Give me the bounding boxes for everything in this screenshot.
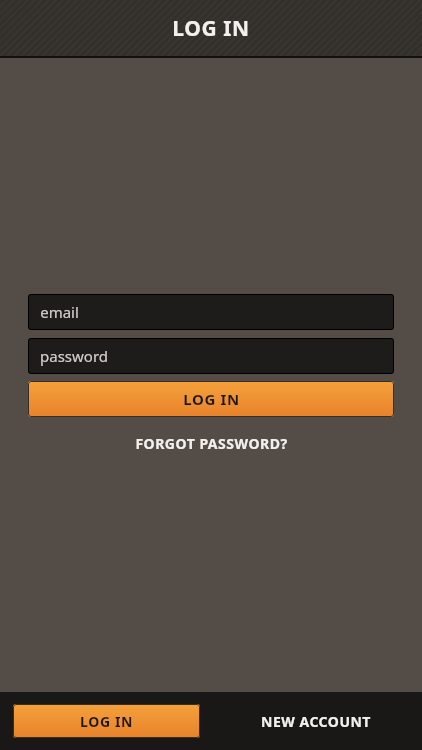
- staticText: LOG IN: [172, 14, 250, 43]
- staticText: LOG IN: [80, 712, 133, 731]
- button[interactable]: LOG IN: [13, 704, 200, 738]
- button[interactable]: NEW ACCOUNT: [211, 701, 420, 741]
- staticText: NEW ACCOUNT: [261, 712, 371, 731]
- staticText: email: [40, 302, 79, 322]
- button[interactable]: FORGOT PASSWORD?: [28, 430, 394, 457]
- button[interactable]: LOG IN: [28, 381, 394, 417]
- staticText: LOG IN: [183, 389, 240, 409]
- button[interactable]: email: [28, 294, 394, 330]
- staticText: password: [40, 346, 108, 366]
- staticText: FORGOT PASSWORD?: [135, 434, 288, 453]
- button[interactable]: password: [28, 338, 394, 374]
